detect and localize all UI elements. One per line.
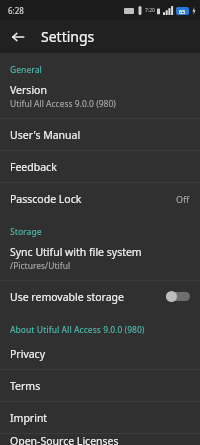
staticText: 7:20 xyxy=(145,7,155,14)
staticText: Privacy xyxy=(10,347,190,361)
staticText: Terms xyxy=(10,379,190,393)
staticText: General xyxy=(10,64,190,76)
button[interactable]: Imprint xyxy=(0,402,200,433)
button[interactable]: Open-Source Licenses xyxy=(0,434,200,445)
button[interactable]: Terms xyxy=(0,370,200,401)
staticText: Feedback xyxy=(10,160,190,174)
staticText: Off xyxy=(176,193,190,205)
staticText: Imprint xyxy=(10,411,190,425)
staticText: Use removable storage xyxy=(10,290,166,304)
staticText: About Utiful All Access 9.0.0 (980) xyxy=(10,324,190,336)
staticText: Passcode Lock xyxy=(10,192,176,206)
button[interactable]: Version xyxy=(0,78,200,118)
staticText: Sync Utiful with file system xyxy=(10,245,142,259)
button[interactable]: Feedback xyxy=(0,151,200,182)
staticText: Version xyxy=(10,83,47,97)
staticText: 6:28 xyxy=(8,5,24,16)
staticText: User's Manual xyxy=(10,128,190,142)
staticText: /Pictures/Utiful xyxy=(10,260,71,272)
staticText: Settings xyxy=(41,27,95,46)
staticText: Utiful All Access 9.0.0 (980) xyxy=(10,98,116,110)
staticText: 65 xyxy=(179,8,186,15)
staticText: Open-Source Licenses xyxy=(10,434,190,445)
button[interactable]: Privacy xyxy=(0,338,200,369)
button[interactable]: Passcode Lock xyxy=(0,183,200,214)
button[interactable]: User's Manual xyxy=(0,119,200,150)
button[interactable]: Use removable storage xyxy=(0,281,200,312)
button[interactable]: Back xyxy=(6,25,30,49)
button[interactable]: Sync Utiful with file system xyxy=(0,240,200,280)
staticText: Storage xyxy=(10,226,190,238)
